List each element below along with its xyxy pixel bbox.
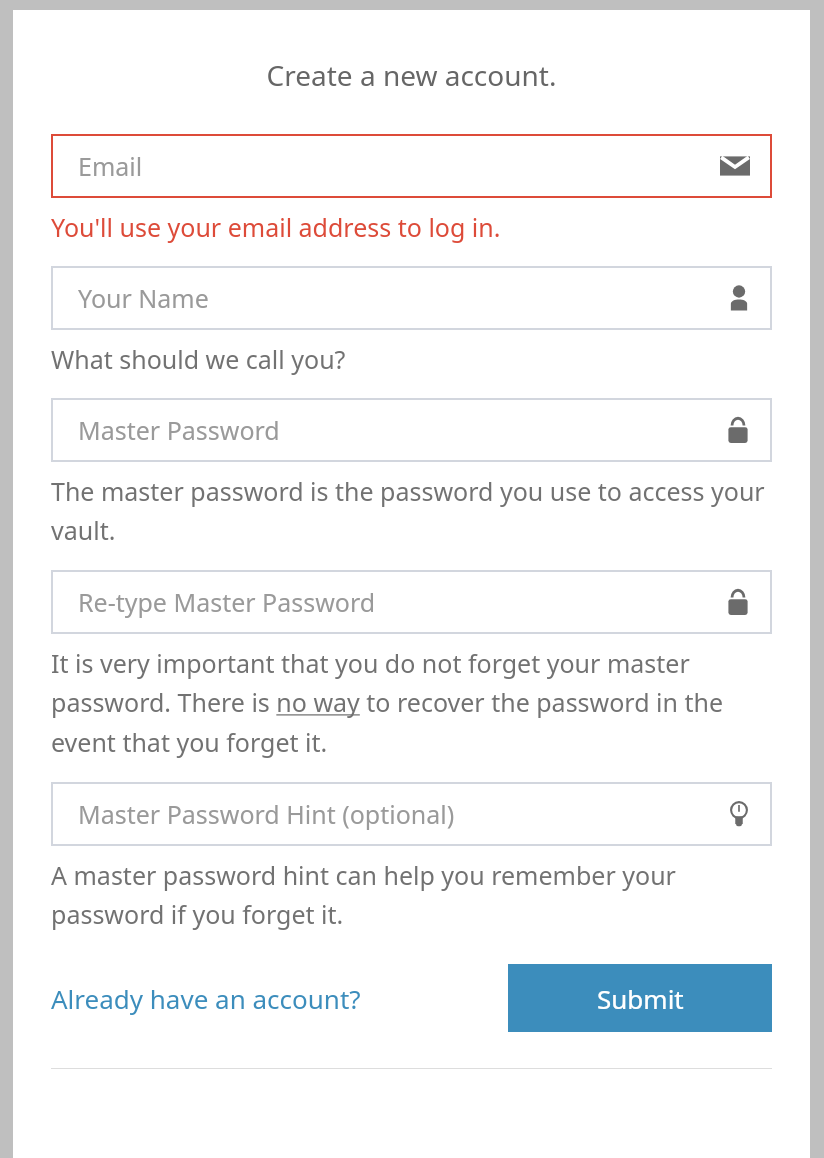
button[interactable]: Email — [51, 134, 772, 198]
button[interactable]: Master Password Hint (optional) — [51, 782, 772, 846]
other: Master password — [726, 416, 750, 444]
staticText: Email — [78, 149, 720, 183]
other: Re-type master password — [726, 588, 750, 616]
staticText: You'll use your email address to log in. — [51, 210, 501, 244]
button[interactable]: Master Password — [51, 398, 772, 462]
staticText: What should we call you? — [51, 342, 346, 376]
button[interactable]: Your Name — [51, 266, 772, 330]
button[interactable]: Re-type Master Password — [51, 570, 772, 634]
staticText: Create a new account. — [13, 56, 810, 94]
other: Password hint — [728, 800, 750, 828]
other: Name — [728, 285, 750, 311]
staticText: Master Password — [78, 413, 726, 447]
staticText: Already have an account? — [51, 981, 361, 1016]
staticText: Re-type Master Password — [78, 585, 726, 619]
staticText: Master Password Hint (optional) — [78, 797, 728, 831]
staticText: It is very important that you do not for… — [51, 646, 772, 760]
button[interactable]: Submit — [508, 964, 772, 1032]
staticText: The master password is the password you … — [51, 474, 772, 548]
staticText: Submit — [597, 981, 684, 1016]
other: Email — [720, 154, 750, 178]
staticText: A master password hint can help you reme… — [51, 858, 772, 932]
staticText: Your Name — [78, 281, 728, 315]
button[interactable]: Already have an account? — [51, 975, 361, 1022]
